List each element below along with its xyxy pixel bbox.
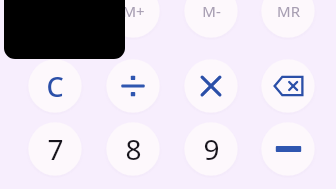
staticText: 9 — [203, 130, 220, 168]
button[interactable]: Multiply — [182, 57, 240, 115]
button[interactable]: MR — [259, 0, 317, 40]
button[interactable]: 8 — [104, 120, 162, 178]
button[interactable]: 7 — [26, 120, 84, 178]
staticText: M+ — [122, 1, 145, 21]
staticText: C — [46, 68, 64, 105]
button[interactable]: Divide — [104, 57, 162, 115]
button[interactable]: 9 — [182, 120, 240, 178]
button[interactable]: M+ — [104, 0, 162, 40]
staticText: 8 — [125, 130, 142, 168]
staticText: M- — [202, 1, 221, 21]
button[interactable]: Backspace — [259, 57, 317, 115]
button[interactable]: Minus — [259, 120, 317, 178]
button[interactable]: Clear — [26, 57, 84, 115]
staticText: MR — [277, 1, 300, 21]
button[interactable]: M- — [182, 0, 240, 40]
staticText: 7 — [47, 130, 64, 168]
